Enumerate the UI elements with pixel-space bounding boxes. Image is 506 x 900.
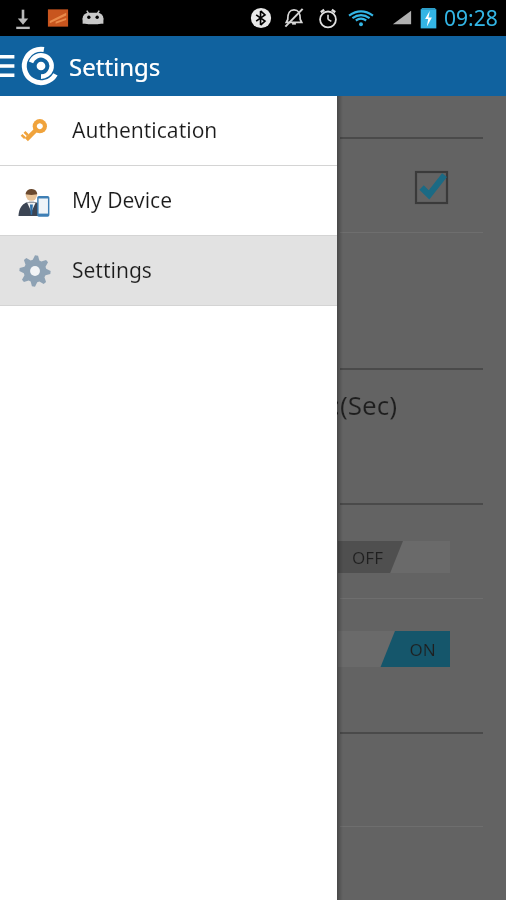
staticText: :(Sec) <box>333 387 397 422</box>
button[interactable]: Open navigation drawer <box>0 36 18 96</box>
button[interactable]: Settings <box>0 236 337 305</box>
button[interactable]: My Device <box>0 166 337 235</box>
staticText: 09:28 <box>444 4 498 33</box>
staticText: Authentication <box>72 116 218 145</box>
button[interactable]: Enabled checkbox <box>416 172 447 203</box>
button[interactable]: Toggle off <box>338 541 450 573</box>
staticText: Settings <box>72 256 152 285</box>
staticText: My Device <box>72 186 172 215</box>
staticText: OFF <box>352 546 383 569</box>
button[interactable]: Authentication <box>0 96 337 165</box>
staticText: ON <box>409 638 436 661</box>
staticText: Settings <box>69 50 161 83</box>
button[interactable]: Toggle on <box>338 631 450 667</box>
